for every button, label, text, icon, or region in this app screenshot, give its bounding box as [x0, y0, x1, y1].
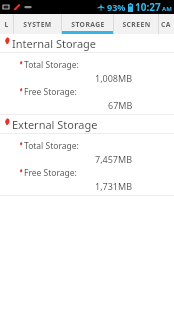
button[interactable]: Free Storage:	[0, 166, 174, 179]
button[interactable]: Total Storage:	[0, 139, 174, 152]
button[interactable]: SCREEN	[114, 14, 158, 34]
button[interactable]: Total Storage:	[0, 58, 174, 71]
staticText: External Storage	[12, 117, 98, 132]
staticText: 10:27	[135, 0, 161, 14]
staticText: SYSTEM	[23, 20, 52, 29]
button[interactable]: L	[0, 14, 13, 34]
staticText: 7,457MB	[95, 153, 133, 165]
staticText: Total Storage:	[24, 140, 79, 152]
staticText: 1,731MB	[95, 180, 133, 192]
staticText: AM	[162, 5, 172, 13]
staticText: STORAGE	[71, 20, 105, 29]
staticText: SCREEN	[122, 20, 151, 29]
staticText: L	[4, 20, 9, 29]
staticText: CAM	[159, 20, 173, 29]
button[interactable]: External Storage	[0, 115, 174, 133]
staticText: Internal Storage	[12, 36, 97, 51]
staticText: 1,008MB	[95, 72, 133, 84]
button[interactable]: SYSTEM	[14, 14, 61, 34]
staticText: Free Storage:	[24, 167, 77, 179]
staticText: 67MB	[108, 99, 133, 111]
button[interactable]: STORAGE	[62, 14, 113, 34]
button[interactable]: Internal Storage	[0, 34, 174, 52]
button[interactable]: CAM	[159, 14, 173, 34]
staticText: Total Storage:	[24, 59, 79, 71]
staticText: 93%	[107, 1, 126, 13]
staticText: Free Storage:	[24, 86, 77, 98]
button[interactable]: Free Storage:	[0, 85, 174, 98]
